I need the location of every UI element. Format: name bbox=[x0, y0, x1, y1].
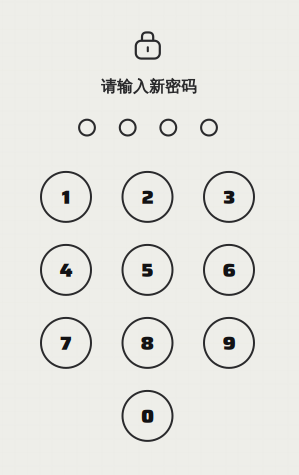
staticText: 2 bbox=[141, 181, 153, 213]
button[interactable]: 8 bbox=[121, 317, 173, 369]
button[interactable]: 3 bbox=[203, 171, 255, 223]
staticText: 6 bbox=[222, 254, 235, 286]
staticText: 5 bbox=[141, 254, 154, 286]
staticText: 0 bbox=[141, 400, 154, 432]
staticText: 9 bbox=[222, 327, 235, 359]
button[interactable]: 7 bbox=[40, 317, 92, 369]
staticText: 3 bbox=[223, 181, 235, 213]
button[interactable]: 1 bbox=[40, 171, 92, 223]
button[interactable]: 5 bbox=[121, 244, 173, 296]
staticText: 1 bbox=[62, 181, 70, 213]
button[interactable]: 2 bbox=[121, 171, 173, 223]
button[interactable]: 6 bbox=[203, 244, 255, 296]
button[interactable]: 9 bbox=[203, 317, 255, 369]
button[interactable]: 4 bbox=[40, 244, 92, 296]
staticText: 4 bbox=[59, 254, 72, 286]
button[interactable]: 0 bbox=[121, 390, 173, 442]
staticText: 请输入新密码 bbox=[101, 77, 197, 96]
staticText: 7 bbox=[60, 327, 72, 359]
staticText: 8 bbox=[140, 327, 154, 359]
